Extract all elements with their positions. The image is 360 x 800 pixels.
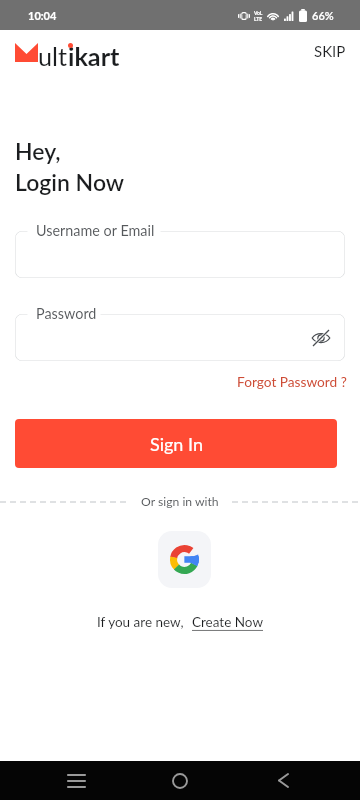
button[interactable]: Back <box>259 761 307 800</box>
staticText: ikart <box>68 41 120 71</box>
button[interactable]: Sign in with Google <box>158 531 211 588</box>
staticText: Create Now <box>192 614 264 630</box>
staticText: Hey, <box>15 137 61 165</box>
staticText: Sign In <box>150 433 203 455</box>
button[interactable]: SKIP <box>300 33 360 69</box>
button[interactable]: Sign In <box>15 419 337 468</box>
staticText: ult <box>38 41 68 71</box>
staticText: Forgot Password ? <box>237 373 347 389</box>
button[interactable]: Recents <box>52 761 100 800</box>
staticText: 10:04 <box>28 9 57 22</box>
staticText: Login Now <box>15 168 125 196</box>
button[interactable]: Create Now <box>192 614 264 630</box>
button[interactable] <box>15 231 345 278</box>
staticText: Username or Email <box>36 222 155 239</box>
button[interactable]: Forgot Password ? <box>231 368 353 394</box>
staticText: SKIP <box>314 42 346 60</box>
button[interactable]: Show password <box>15 314 345 361</box>
staticText: VoL <box>254 10 263 16</box>
staticText: LTE <box>254 16 263 22</box>
staticText: Password <box>36 305 97 322</box>
button[interactable]: Home <box>156 761 204 800</box>
button[interactable]: Show password <box>308 325 334 351</box>
staticText: 66% <box>312 9 334 22</box>
staticText: Or sign in with <box>141 494 219 509</box>
staticText: If you are new, <box>97 614 184 630</box>
